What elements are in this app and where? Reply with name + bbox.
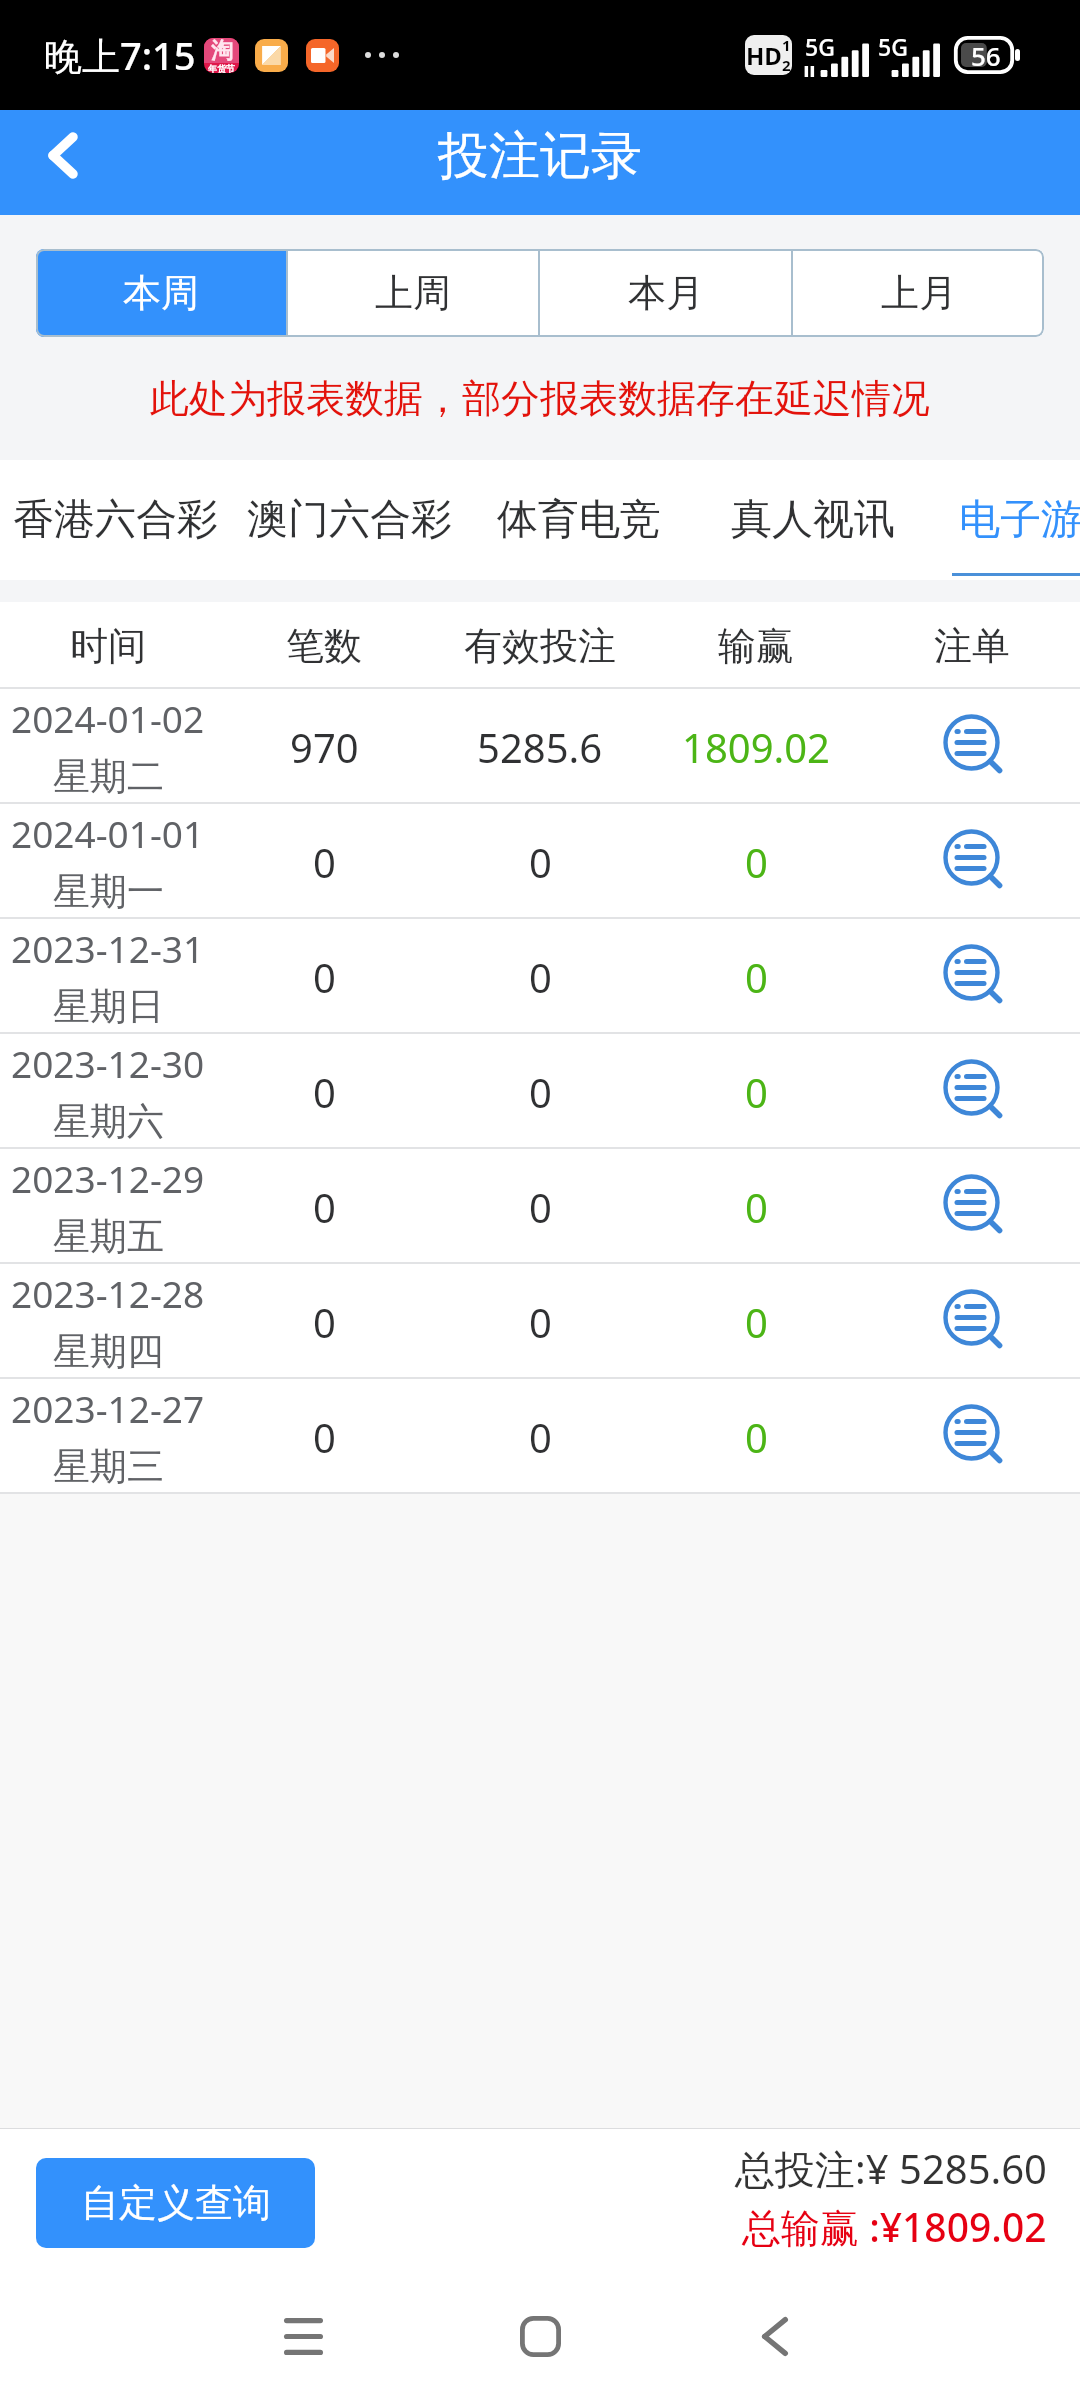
button[interactable]: 本周 <box>36 249 286 337</box>
staticText: 5285.6 <box>477 720 603 774</box>
button[interactable]: 香港六合彩 <box>13 460 218 580</box>
staticText: 时间 <box>70 622 146 670</box>
button[interactable]: 电子游戏 <box>959 460 1080 580</box>
button[interactable]: 自定义查询 <box>36 2158 315 2248</box>
staticText: 真人视讯 <box>731 494 895 546</box>
staticText: 0 <box>745 950 768 1004</box>
staticText: 上周 <box>375 269 451 317</box>
button[interactable]: 查看注单 <box>924 1044 1020 1140</box>
staticText: 56 <box>971 38 1001 73</box>
staticText: 0 <box>529 1180 552 1234</box>
staticText: 总投注:¥ 5285.60 <box>735 2141 1047 2196</box>
staticText: 2 <box>782 55 791 75</box>
button[interactable]: 查看注单 <box>924 1159 1020 1255</box>
staticText: 星期六 <box>53 1098 164 1145</box>
staticText: 0 <box>313 950 336 1004</box>
button[interactable]: 上月 <box>793 249 1044 337</box>
button[interactable]: Back <box>715 2276 835 2396</box>
staticText: 本月 <box>628 269 704 317</box>
staticText: 0 <box>745 1180 768 1234</box>
staticText: 此处为报表数据，部分报表数据存在延迟情况 <box>0 374 1080 423</box>
button[interactable]: 真人视讯 <box>731 460 895 580</box>
button[interactable]: 2024-01-01 <box>0 804 1080 919</box>
staticText: 输赢 <box>718 622 794 670</box>
staticText: 2023-12-29 <box>11 1153 205 1203</box>
button[interactable]: 澳门六合彩 <box>247 460 452 580</box>
button[interactable]: 2023-12-30 <box>0 1034 1080 1149</box>
staticText: 星期一 <box>53 868 164 915</box>
button[interactable]: Home <box>480 2276 600 2396</box>
staticText: 1 <box>782 35 791 55</box>
staticText: 0 <box>313 1180 336 1234</box>
button[interactable]: 2024-01-02 <box>0 689 1080 804</box>
staticText: 星期日 <box>53 983 164 1030</box>
staticText: 笔数 <box>286 622 362 670</box>
staticText: 5G <box>805 31 835 62</box>
staticText: 2024-01-01 <box>11 808 205 858</box>
staticText: 年货节 <box>208 63 235 73</box>
staticText: 香港六合彩 <box>13 494 218 546</box>
staticText: 晚上7:15 <box>44 29 196 81</box>
staticText: 0 <box>529 835 552 889</box>
staticText: 0 <box>745 1295 768 1349</box>
staticText: 2024-01-02 <box>11 693 205 743</box>
staticText: 星期四 <box>53 1328 164 1375</box>
button[interactable]: 查看注单 <box>924 1274 1020 1370</box>
staticText: 2023-12-27 <box>11 1383 205 1433</box>
button[interactable]: 查看注单 <box>924 814 1020 910</box>
button[interactable]: 查看注单 <box>924 929 1020 1025</box>
staticText: 总输赢 :¥1809.02 <box>742 2200 1047 2253</box>
staticText: 星期三 <box>53 1443 164 1490</box>
staticText: 澳门六合彩 <box>247 494 452 546</box>
staticText: 自定义查询 <box>81 2179 271 2227</box>
staticText: 0 <box>313 835 336 889</box>
button[interactable]: 2023-12-29 <box>0 1149 1080 1264</box>
staticText: 2023-12-31 <box>11 923 205 973</box>
button[interactable]: 查看注单 <box>924 1389 1020 1485</box>
staticText: 星期二 <box>53 753 164 800</box>
staticText: 5G <box>878 31 908 62</box>
staticText: 0 <box>313 1065 336 1119</box>
staticText: 淘 <box>211 38 233 65</box>
button[interactable]: 查看注单 <box>924 699 1020 795</box>
staticText: 上月 <box>881 269 957 317</box>
button[interactable]: 2023-12-28 <box>0 1264 1080 1379</box>
staticText: 0 <box>745 835 768 889</box>
button[interactable]: 上周 <box>288 249 538 337</box>
button[interactable]: 本月 <box>540 249 791 337</box>
staticText: 0 <box>529 950 552 1004</box>
staticText: 0 <box>529 1065 552 1119</box>
staticText: 970 <box>290 720 359 774</box>
staticText: 1809.02 <box>682 720 830 774</box>
staticText: 0 <box>313 1295 336 1349</box>
staticText: 本周 <box>123 269 199 317</box>
button[interactable]: 2023-12-27 <box>0 1379 1080 1494</box>
staticText: 2023-12-30 <box>11 1038 205 1088</box>
staticText: 投注记录 <box>438 124 642 188</box>
staticText: 0 <box>529 1410 552 1464</box>
staticText: 注单 <box>934 622 1010 670</box>
staticText: 0 <box>313 1410 336 1464</box>
staticText: 0 <box>529 1295 552 1349</box>
staticText: 有效投注 <box>464 622 616 670</box>
staticText: HD <box>746 39 782 72</box>
staticText: 星期五 <box>53 1213 164 1260</box>
button[interactable]: Back <box>16 110 110 215</box>
button[interactable]: 2023-12-31 <box>0 919 1080 1034</box>
button[interactable]: Recents <box>243 2276 363 2396</box>
staticText: 电子游戏 <box>959 494 1080 546</box>
staticText: 体育电竞 <box>497 494 661 546</box>
button[interactable]: 体育电竞 <box>497 460 661 580</box>
staticText: 0 <box>745 1410 768 1464</box>
staticText: 0 <box>745 1065 768 1119</box>
staticText: 2023-12-28 <box>11 1268 205 1318</box>
